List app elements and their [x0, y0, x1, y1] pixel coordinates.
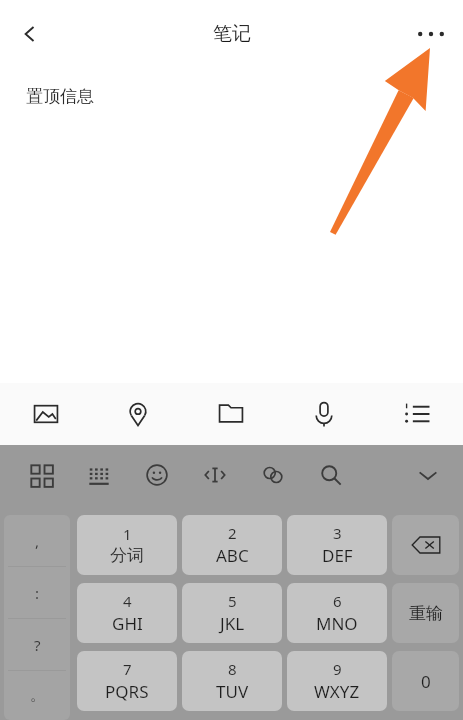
staticText: 重输 [409, 603, 443, 624]
button[interactable]: : [4, 567, 70, 618]
button[interactable]: More options [407, 10, 455, 58]
button[interactable]: Clipboard [244, 445, 302, 505]
staticText: 5 [228, 591, 237, 611]
button[interactable]: Cursor [186, 445, 244, 505]
button[interactable]: Hide keyboard [401, 445, 455, 505]
button[interactable]: 6 [287, 583, 387, 643]
staticText: TUV [216, 680, 249, 703]
button[interactable]: Backspace [392, 515, 459, 575]
button[interactable]: 2 [182, 515, 282, 575]
staticText: MNO [316, 612, 358, 635]
staticText: , [35, 531, 40, 551]
button[interactable]: ? [4, 619, 70, 670]
staticText: : [35, 583, 40, 603]
button[interactable]: 重输 [392, 583, 459, 643]
button[interactable]: 4 [77, 583, 177, 643]
button[interactable]: 7 [77, 651, 177, 711]
staticText: 笔记 [213, 22, 251, 46]
staticText: 6 [333, 591, 342, 611]
staticText: ? [34, 635, 41, 655]
staticText: 7 [123, 659, 132, 679]
button[interactable]: 8 [182, 651, 282, 711]
staticText: 1 [123, 524, 132, 544]
button[interactable]: Search [302, 445, 360, 505]
button[interactable]: Emoji [128, 445, 186, 505]
button[interactable]: List [370, 383, 463, 445]
button[interactable]: Location [92, 383, 184, 445]
button[interactable]: Folder [184, 383, 277, 445]
button[interactable]: 0 [392, 651, 459, 711]
staticText: 。 [30, 686, 45, 705]
staticText: WXYZ [314, 680, 360, 703]
staticText: JKL [220, 612, 245, 635]
button[interactable]: Back [6, 10, 54, 58]
staticText: 0 [421, 670, 431, 693]
staticText: ABC [216, 544, 249, 567]
staticText: 置顶信息 [26, 86, 94, 107]
staticText: 9 [333, 659, 342, 679]
staticText: 2 [228, 523, 237, 543]
button[interactable]: , [4, 515, 70, 566]
staticText: DEF [322, 544, 353, 567]
button[interactable]: Apps [12, 445, 70, 505]
button[interactable]: 1 [77, 515, 177, 575]
button[interactable]: 9 [287, 651, 387, 711]
staticText: PQRS [105, 680, 149, 703]
staticText: GHI [112, 612, 143, 635]
button[interactable]: Keyboard [70, 445, 128, 505]
staticText: 分词 [110, 545, 144, 566]
button[interactable]: Voice [277, 383, 370, 445]
button[interactable]: 5 [182, 583, 282, 643]
button[interactable]: 3 [287, 515, 387, 575]
staticText: 4 [123, 591, 132, 611]
staticText: 8 [228, 659, 237, 679]
button[interactable]: Image [0, 383, 92, 445]
staticText: 3 [333, 523, 342, 543]
